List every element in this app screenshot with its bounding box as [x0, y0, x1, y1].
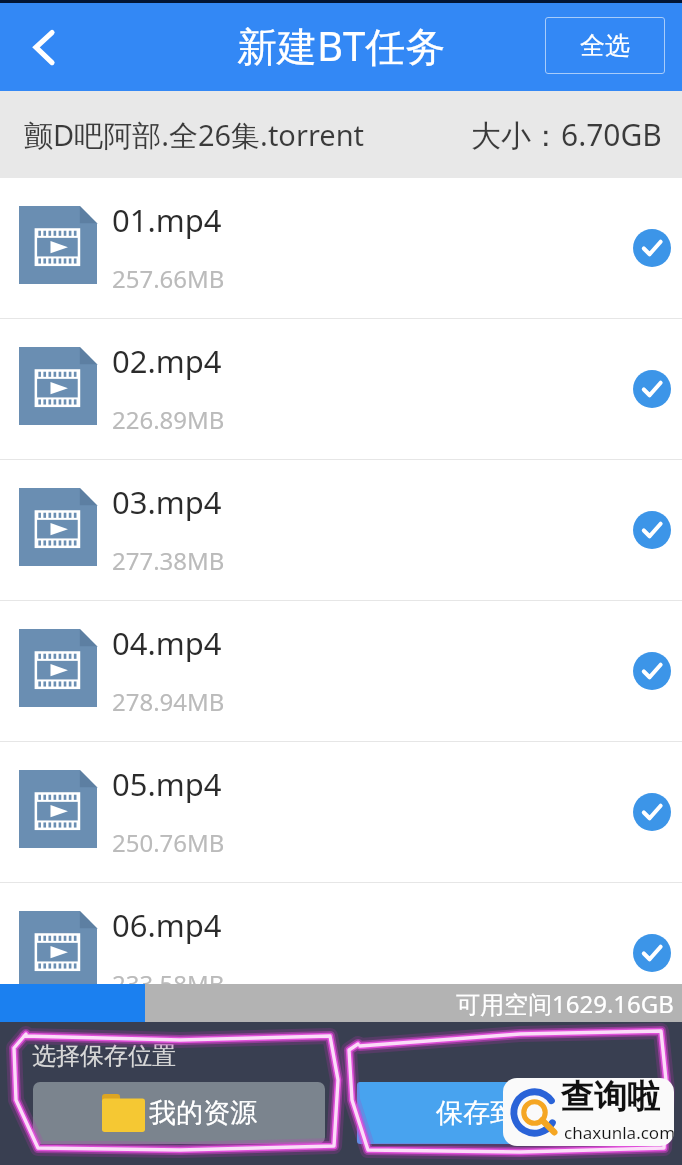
button[interactable]: Selected	[633, 793, 671, 831]
staticText: 查询啦	[561, 1078, 660, 1118]
button[interactable]: 全选	[545, 17, 665, 74]
staticText: 01.mp4	[112, 199, 222, 241]
staticText: 大小：6.70GB	[471, 114, 662, 155]
button[interactable]: 02.mp4	[0, 319, 682, 459]
staticText: 233.58MB	[112, 967, 225, 1000]
button[interactable]: Selected	[633, 652, 671, 690]
staticText: 226.89MB	[112, 403, 225, 436]
staticText: 257.66MB	[112, 262, 225, 295]
button[interactable]: Selected	[633, 229, 671, 267]
button[interactable]: 我的资源	[33, 1082, 325, 1144]
staticText: chaxunla.com	[564, 1121, 674, 1144]
button[interactable]: 03.mp4	[0, 460, 682, 600]
staticText: 02.mp4	[112, 340, 222, 382]
staticText: 03.mp4	[112, 481, 222, 523]
button[interactable]: Selected	[633, 370, 671, 408]
button[interactable]: 保存到手机	[357, 1082, 649, 1144]
staticText: 全选	[580, 30, 630, 61]
staticText: 颤D吧阿部.全26集.torrent	[24, 115, 365, 155]
staticText: 我的资源	[149, 1096, 257, 1130]
button[interactable]: 04.mp4	[0, 601, 682, 741]
staticText: 278.94MB	[112, 685, 225, 718]
staticText: 277.38MB	[112, 544, 225, 577]
staticText: 保存到手机	[436, 1096, 571, 1130]
button[interactable]: Back	[12, 16, 72, 76]
button[interactable]: Selected	[633, 511, 671, 549]
button[interactable]: Selected	[633, 934, 671, 972]
button[interactable]: 06.mp4	[0, 883, 682, 1023]
button[interactable]: 05.mp4	[0, 742, 682, 882]
button[interactable]: 01.mp4	[0, 178, 682, 318]
staticText: 可用空间1629.16GB	[456, 987, 674, 1020]
staticText: 选择保存位置	[32, 1041, 176, 1071]
staticText: 06.mp4	[112, 904, 222, 946]
staticText: 250.76MB	[112, 826, 225, 859]
staticText: 05.mp4	[112, 763, 222, 805]
staticText: 04.mp4	[112, 622, 222, 664]
staticText: 新建BT任务	[237, 18, 446, 73]
